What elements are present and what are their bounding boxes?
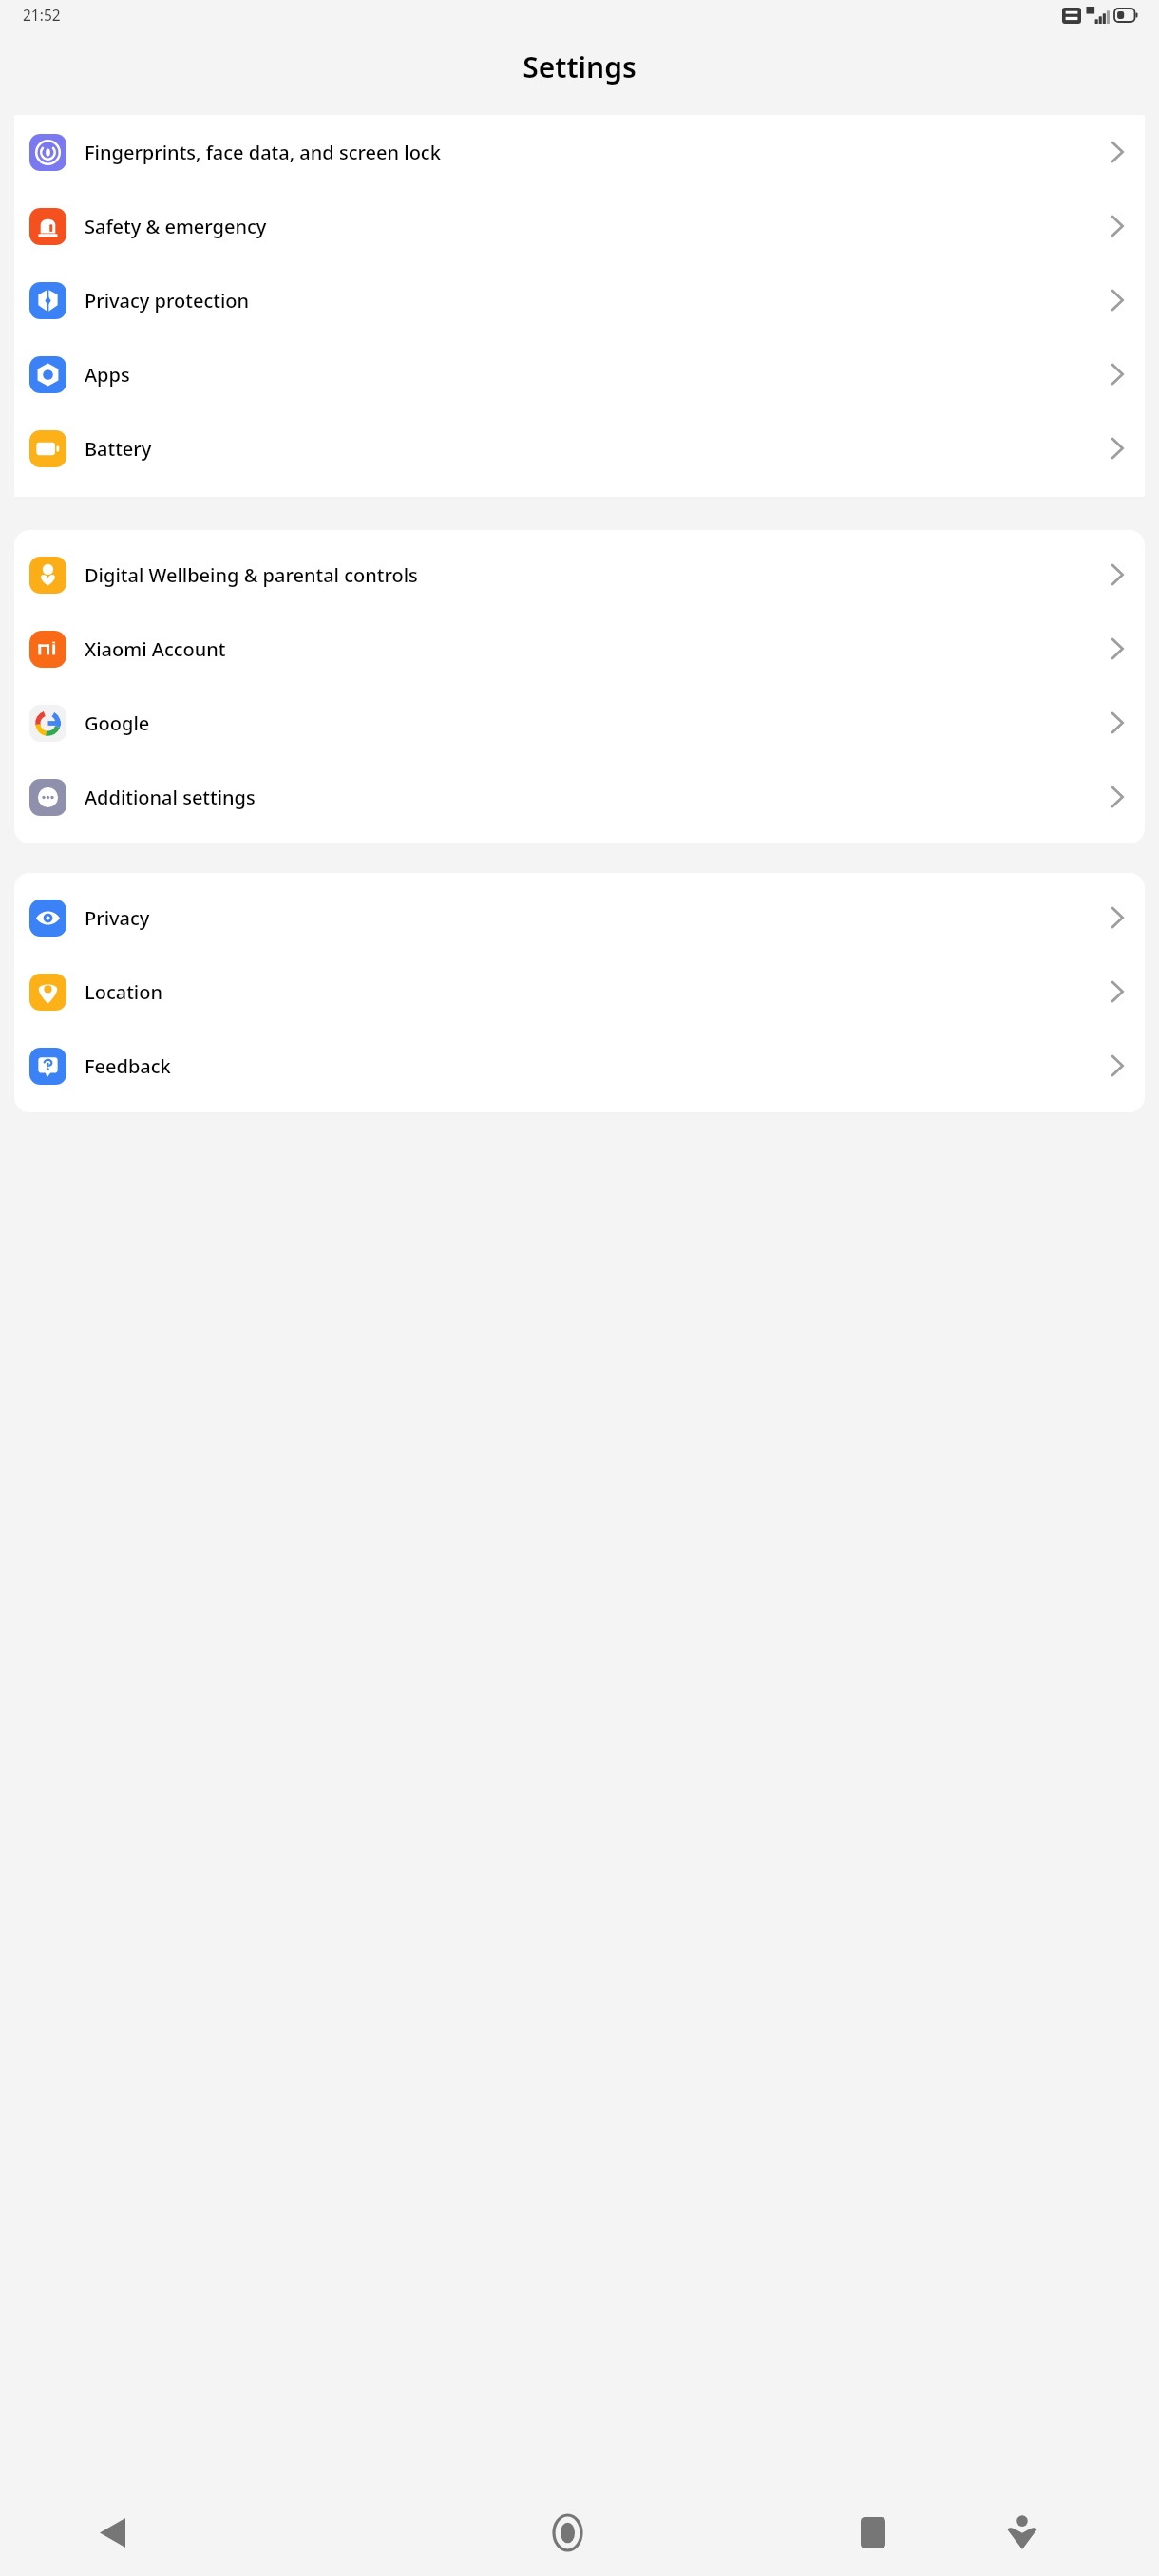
button[interactable]: Apps bbox=[14, 337, 1145, 411]
button[interactable]: Xiaomi Account bbox=[14, 612, 1145, 686]
button[interactable]: Privacy protection bbox=[14, 263, 1145, 337]
staticText: Apps bbox=[85, 362, 1099, 388]
staticText: Google bbox=[85, 710, 1099, 736]
button[interactable]: Location bbox=[14, 955, 1145, 1029]
button[interactable]: Feedback bbox=[14, 1029, 1145, 1103]
staticText: Fingerprints, face data, and screen lock bbox=[85, 140, 1099, 165]
staticText: 21:52 bbox=[23, 5, 61, 25]
button[interactable]: Safety & emergency bbox=[14, 189, 1145, 263]
staticText: Privacy protection bbox=[85, 288, 1099, 313]
button[interactable]: Digital Wellbeing & parental controls bbox=[14, 538, 1145, 612]
staticText: Additional settings bbox=[85, 785, 1099, 810]
button[interactable]: Home bbox=[533, 2498, 601, 2567]
staticText: Location bbox=[85, 979, 1099, 1005]
staticText: Battery bbox=[85, 436, 1099, 462]
staticText: Privacy bbox=[85, 905, 1099, 931]
button[interactable]: Additional settings bbox=[14, 760, 1145, 834]
staticText: Xiaomi Account bbox=[85, 636, 1099, 662]
button[interactable]: One-handed mode bbox=[988, 2498, 1056, 2567]
button[interactable]: Privacy bbox=[14, 881, 1145, 955]
button[interactable]: Battery bbox=[14, 411, 1145, 485]
button[interactable]: Fingerprints, face data, and screen lock bbox=[14, 115, 1145, 189]
button[interactable]: Google bbox=[14, 686, 1145, 760]
button[interactable]: Recent apps bbox=[839, 2498, 907, 2567]
staticText: Safety & emergency bbox=[85, 214, 1099, 239]
staticText: Digital Wellbeing & parental controls bbox=[85, 562, 1099, 588]
button[interactable]: Back bbox=[78, 2498, 146, 2567]
staticText: Feedback bbox=[85, 1053, 1099, 1079]
staticText: Settings bbox=[522, 47, 636, 86]
